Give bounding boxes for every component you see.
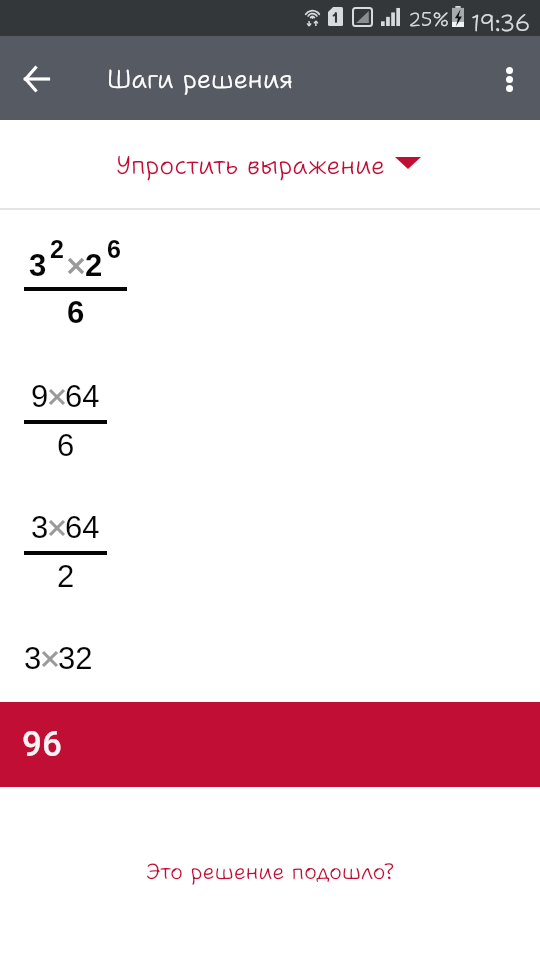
button[interactable]: More options: [478, 36, 540, 120]
staticText: 9: [31, 379, 49, 414]
staticText: 25%: [408, 7, 450, 32]
staticText: Это решение подошло?: [146, 857, 394, 886]
staticText: 64: [65, 379, 100, 414]
staticText: 2: [57, 559, 75, 594]
staticText: 96: [22, 724, 62, 765]
staticText: 6: [107, 235, 121, 263]
staticText: 19:36: [471, 8, 531, 39]
staticText: 2: [85, 248, 103, 283]
button[interactable]: 96: [0, 702, 540, 787]
staticText: Упростить выражение: [116, 148, 386, 182]
staticText: 3: [31, 510, 49, 545]
staticText: 32: [58, 641, 93, 676]
staticText: 6: [57, 428, 75, 463]
button[interactable]: Упростить выражение: [0, 120, 540, 208]
staticText: 64: [65, 510, 100, 545]
staticText: 6: [67, 295, 85, 330]
staticText: Шаги решения: [107, 61, 294, 96]
staticText: 3: [29, 248, 47, 283]
staticText: 3: [24, 641, 42, 676]
staticText: 1: [332, 9, 339, 27]
button[interactable]: Back: [0, 36, 72, 120]
staticText: 2: [50, 235, 64, 263]
button[interactable]: Это решение подошло?: [0, 849, 540, 893]
